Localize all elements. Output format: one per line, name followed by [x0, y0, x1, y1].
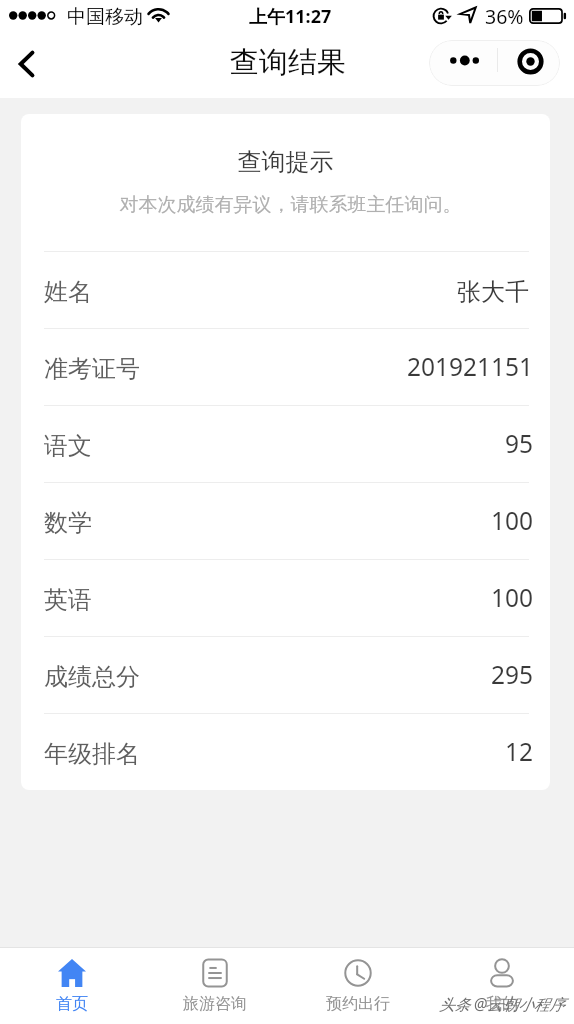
staticText: 100 — [491, 504, 534, 537]
staticText: 英语 — [44, 585, 92, 615]
staticText: 上午11:27 — [249, 4, 332, 29]
button[interactable]: Close mini program — [498, 40, 560, 86]
button[interactable]: 年级排名 — [21, 713, 550, 790]
button[interactable]: 成绩总分 — [21, 636, 550, 713]
staticText: 准考证号 — [44, 354, 140, 384]
staticText: 我的 — [486, 994, 518, 1014]
staticText: 张大千 — [457, 277, 529, 307]
staticText: 姓名 — [44, 277, 92, 307]
staticText: 成绩总分 — [44, 662, 140, 692]
staticText: 295 — [491, 658, 534, 691]
staticText: 数学 — [44, 508, 92, 538]
staticText: 100 — [491, 581, 534, 614]
staticText: 12 — [505, 735, 534, 768]
staticText: 36% — [485, 3, 524, 30]
button[interactable]: 英语 — [21, 559, 550, 636]
button[interactable]: 准考证号 — [21, 328, 550, 405]
staticText: 95 — [505, 427, 534, 460]
staticText: 首页 — [56, 994, 88, 1014]
button[interactable]: Back — [3, 39, 47, 83]
staticText: 中国移动 — [67, 5, 143, 29]
staticText: 头条 @云朝小程序 — [439, 993, 565, 1014]
staticText: 预约出行 — [326, 994, 390, 1014]
staticText: 201921151 — [407, 350, 534, 383]
button[interactable]: 语文 — [21, 405, 550, 482]
staticText: 年级排名 — [44, 739, 140, 769]
staticText: 查询提示 — [21, 147, 550, 177]
staticText: 对本次成绩有异议，请联系班主任询问。 — [26, 193, 550, 217]
button[interactable]: More — [429, 40, 497, 86]
button[interactable]: 姓名 — [21, 251, 550, 328]
staticText: 查询结果 — [230, 44, 346, 81]
button[interactable]: 首页 — [0, 948, 143, 1024]
button[interactable]: 我的 — [430, 948, 574, 1024]
button[interactable]: 预约出行 — [286, 948, 430, 1024]
button[interactable]: 数学 — [21, 482, 550, 559]
button[interactable]: 旅游咨询 — [143, 948, 286, 1024]
staticText: 旅游咨询 — [183, 994, 247, 1014]
staticText: 语文 — [44, 431, 92, 461]
